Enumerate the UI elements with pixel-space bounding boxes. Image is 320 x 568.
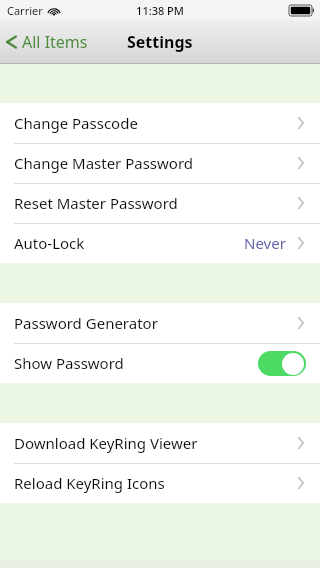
staticText: Never — [244, 233, 286, 253]
button[interactable]: Password Generator — [0, 303, 320, 343]
staticText: Password Generator — [14, 313, 158, 333]
staticText: Settings — [127, 31, 193, 53]
button[interactable]: Reset Master Password — [0, 183, 320, 223]
staticText: Reload KeyRing Icons — [14, 473, 165, 493]
staticText: Auto-Lock — [14, 233, 85, 253]
staticText: All Items — [22, 31, 88, 53]
staticText: Change Passcode — [14, 113, 138, 133]
button[interactable]: Change Passcode — [0, 103, 320, 143]
button[interactable]: Auto-Lock — [0, 223, 320, 263]
staticText: 11:38 PM — [136, 3, 184, 18]
staticText: Change Master Password — [14, 153, 194, 173]
button[interactable]: Download KeyRing Viewer — [0, 423, 320, 463]
staticText: Download KeyRing Viewer — [14, 433, 198, 453]
button[interactable]: All Items — [6, 22, 88, 62]
button[interactable]: Change Master Password — [0, 143, 320, 183]
button[interactable]: Show Password toggle, on — [258, 351, 306, 376]
button[interactable]: Show Password — [0, 343, 320, 383]
staticText: Carrier — [7, 3, 43, 18]
staticText: Show Password — [14, 353, 124, 373]
staticText: Reset Master Password — [14, 193, 178, 213]
button[interactable]: Reload KeyRing Icons — [0, 463, 320, 503]
